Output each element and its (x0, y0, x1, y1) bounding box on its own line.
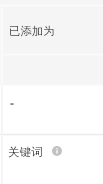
staticText: 关键词 (8, 145, 43, 159)
button[interactable]: Info (52, 146, 62, 156)
staticText: 已添加为 (9, 24, 55, 38)
